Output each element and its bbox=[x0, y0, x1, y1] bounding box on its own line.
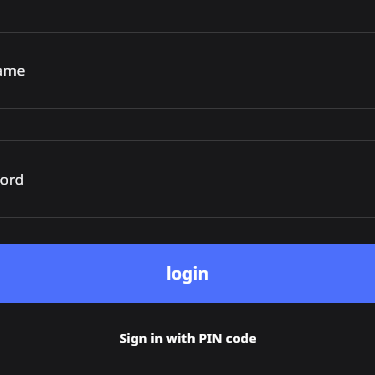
staticText: username bbox=[0, 60, 26, 80]
button[interactable]: login bbox=[0, 244, 375, 303]
staticText: Sign in with PIN code bbox=[119, 329, 257, 347]
button[interactable]: Sign in with PIN code bbox=[0, 320, 375, 356]
staticText: password bbox=[0, 169, 24, 189]
staticText: login bbox=[166, 262, 209, 285]
button[interactable]: password bbox=[0, 140, 375, 217]
button[interactable]: username bbox=[0, 32, 375, 108]
